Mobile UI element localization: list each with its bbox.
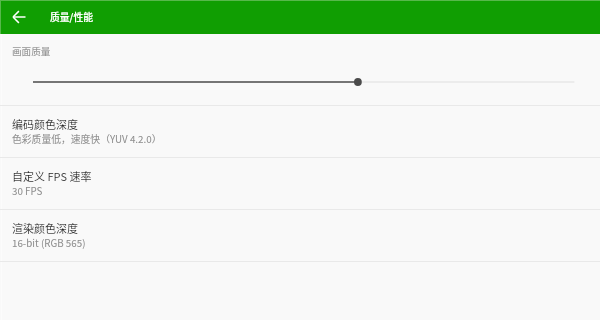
staticText: 30 FPS [12,184,43,198]
button[interactable]: 编码颜色深度 [0,106,600,157]
staticText: 16-bit (RGB 565) [12,236,86,250]
staticText: 色彩质量低，速度快（YUV 4.2.0） [12,132,162,146]
staticText: 画面质量 [12,44,51,58]
button[interactable]: 自定义 FPS 速率 [0,158,600,209]
staticText: 质量/性能 [50,10,94,24]
staticText: 编码颜色深度 [12,116,78,132]
button[interactable]: 渲染颜色深度 [0,210,600,261]
button[interactable]: Back [0,0,34,34]
button[interactable]: Picture quality slider [0,68,600,96]
staticText: 自定义 FPS 速率 [12,168,92,184]
staticText: 渲染颜色深度 [12,220,78,236]
